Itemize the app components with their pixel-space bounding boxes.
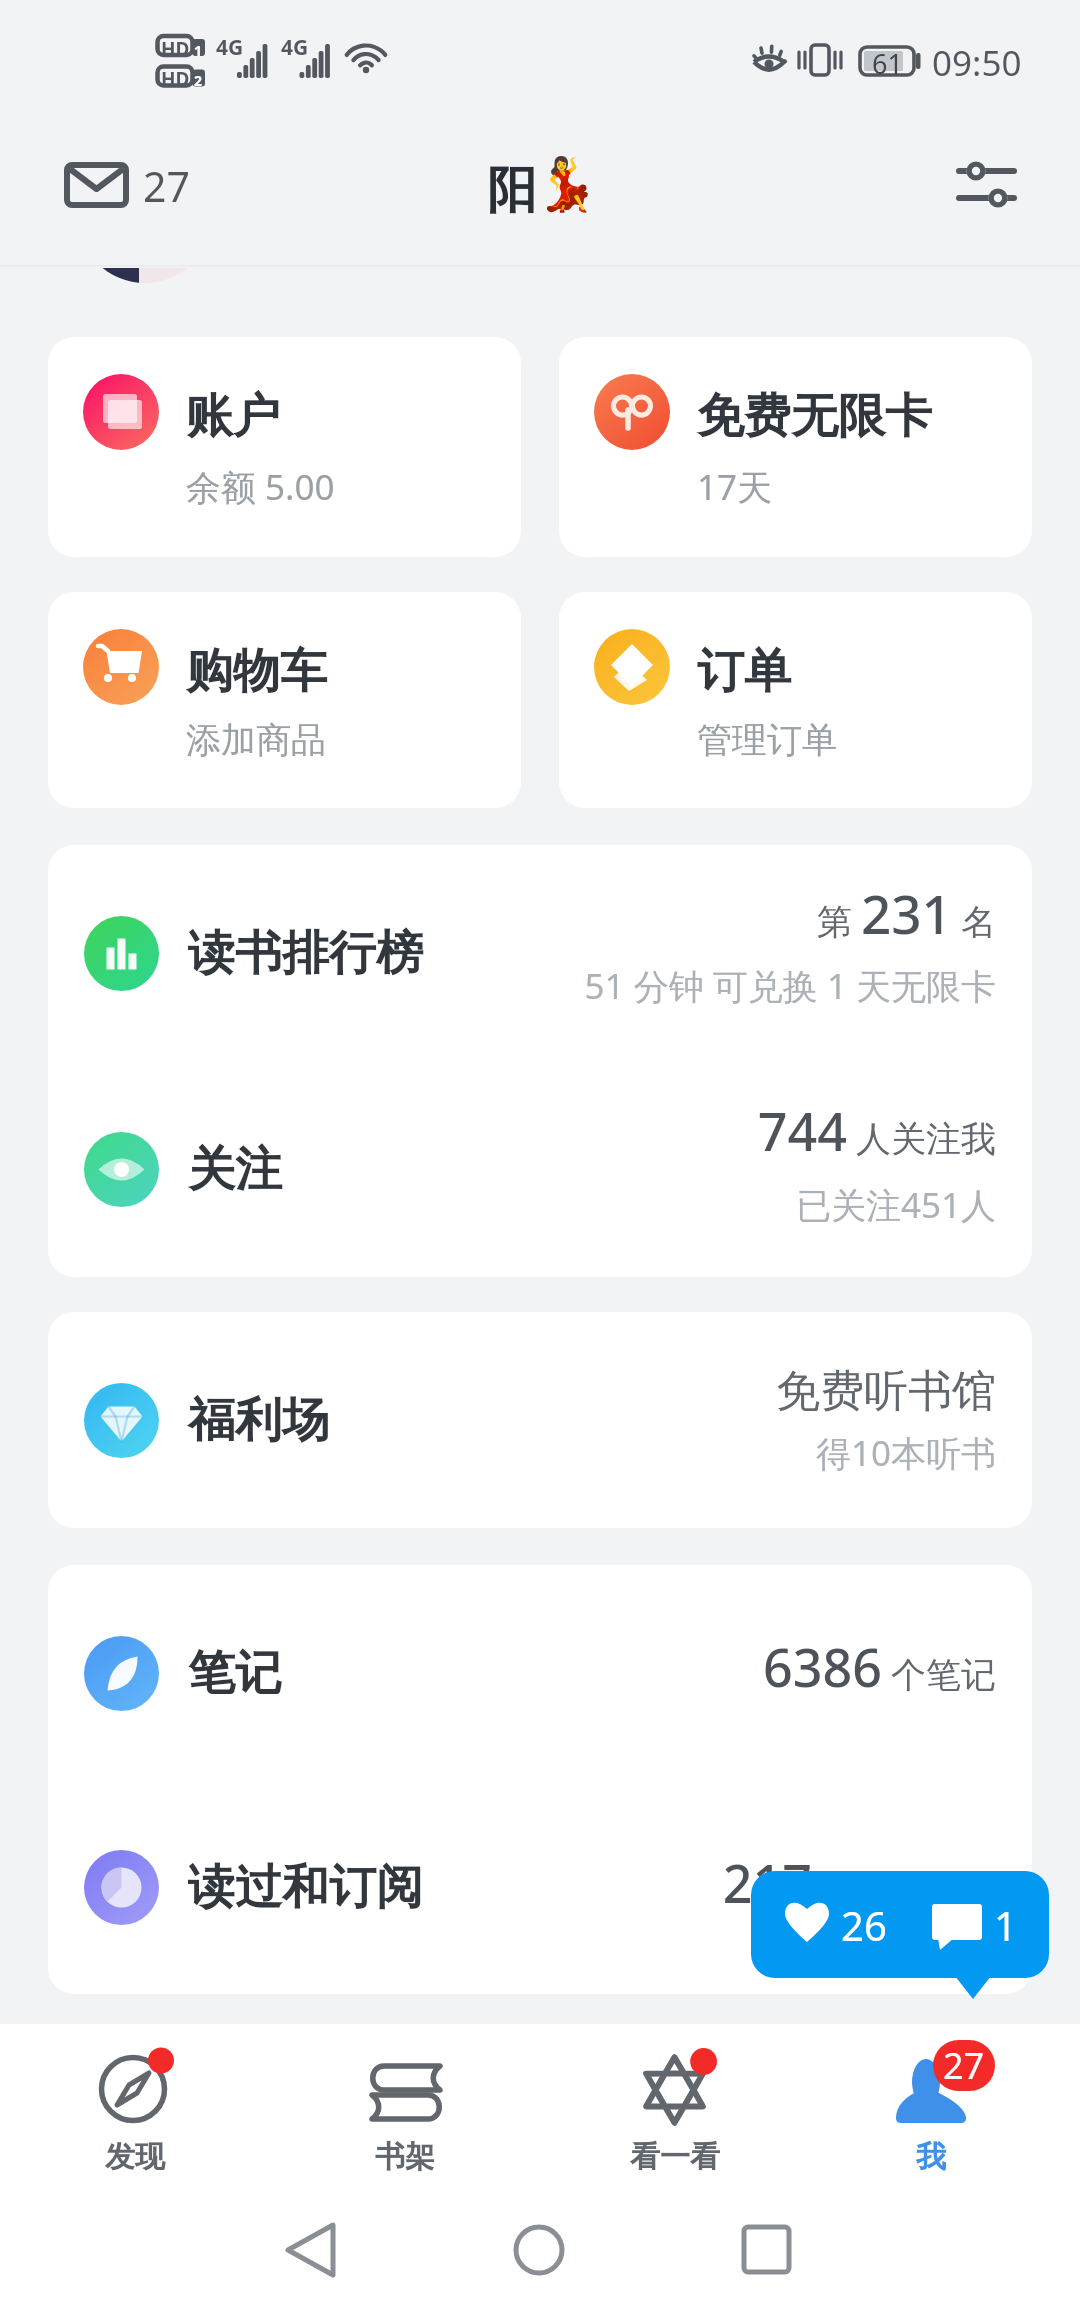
staticText: 读书排行榜 — [188, 924, 423, 983]
staticText: 得10本听书 — [815, 1429, 996, 1477]
button[interactable]: 关注 — [48, 1061, 1032, 1277]
staticText: 51 分钟 可兑换 1 天无限卡 — [584, 962, 996, 1010]
button[interactable]: Recent apps — [706, 2200, 826, 2300]
button[interactable]: 27 — [810, 2024, 1080, 2185]
button[interactable]: Back — [250, 2200, 370, 2300]
staticText: 27 — [143, 158, 190, 214]
staticText: 余额 5.00 — [186, 463, 335, 511]
button[interactable]: 账户 — [48, 337, 521, 557]
staticText: 4G — [281, 33, 309, 62]
staticText: 订单 — [697, 642, 791, 701]
button[interactable]: 购物车 — [48, 592, 521, 808]
staticText: 第 231 名 — [816, 877, 996, 949]
staticText: 1 — [994, 1898, 1017, 1952]
button[interactable]: Likes and comments — [751, 1871, 1049, 2001]
staticText: 购物车 — [186, 642, 327, 701]
staticText: 09:50 — [932, 39, 1022, 87]
staticText: 1 — [194, 41, 203, 60]
staticText: 2 — [194, 71, 203, 90]
staticText: 61 — [872, 45, 903, 82]
staticText: 书架 — [375, 2138, 435, 2176]
staticText: 添加商品 — [186, 718, 326, 762]
staticText: 4G — [216, 33, 244, 62]
button[interactable]: Home — [479, 2200, 599, 2300]
staticText: 读过和订阅 — [188, 1858, 423, 1917]
button[interactable]: 读书排行榜 — [48, 845, 1032, 1061]
staticText: 我 — [916, 2138, 946, 2176]
staticText: 管理订单 — [697, 718, 837, 762]
staticText: 217 个读过订阅 — [722, 1847, 996, 1918]
button[interactable]: 看一看 — [540, 2024, 810, 2185]
staticText: 看一看 — [630, 2138, 720, 2176]
staticText: 17天 — [697, 463, 773, 511]
staticText: HD — [161, 36, 190, 62]
staticText: 26 — [841, 1898, 887, 1952]
staticText: 福利场 — [188, 1391, 329, 1450]
staticText: 发现 — [105, 2138, 165, 2176]
staticText: 免费无限卡 — [697, 387, 932, 446]
staticText: HD — [161, 66, 190, 92]
button[interactable]: 书架 — [270, 2024, 540, 2185]
button[interactable]: Messages — [44, 142, 214, 228]
button[interactable]: 发现 — [0, 2024, 270, 2185]
staticText: 6386 个笔记 — [762, 1631, 996, 1702]
button[interactable]: 福利场 — [48, 1312, 1032, 1528]
staticText: 27 — [943, 2041, 985, 2090]
staticText: 阳 — [487, 159, 537, 222]
button[interactable]: Settings — [926, 131, 1046, 247]
staticText: 账户 — [186, 387, 280, 446]
button[interactable]: 读过和订阅 — [48, 1781, 1032, 1994]
button[interactable]: 免费无限卡 — [559, 337, 1032, 557]
staticText: 笔记 — [188, 1644, 282, 1703]
staticText: 已关注451人 — [795, 1181, 996, 1229]
staticText: 关注 — [188, 1140, 282, 1199]
staticText: 💃 — [534, 154, 599, 215]
button[interactable]: 笔记 — [48, 1565, 1032, 1781]
staticText: 免费听书馆 — [776, 1364, 996, 1419]
staticText: 744 人关注我 — [757, 1095, 996, 1166]
button[interactable]: 订单 — [559, 592, 1032, 808]
